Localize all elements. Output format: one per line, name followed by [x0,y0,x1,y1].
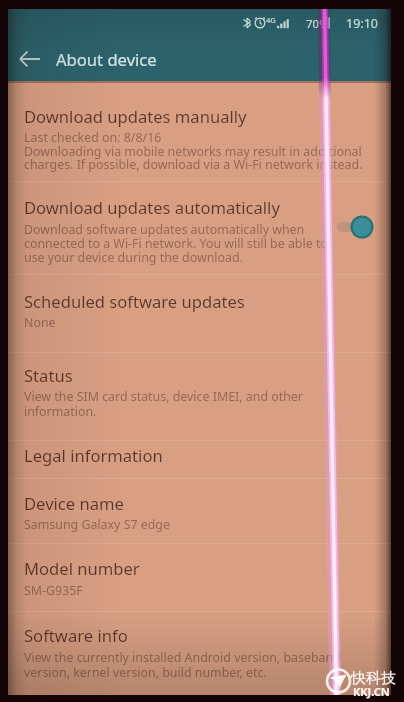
button[interactable]: Device name [24,492,124,515]
staticText: Software info [24,624,128,647]
staticText: Scheduled software updates [24,290,245,313]
staticText: Model number [24,557,140,580]
button[interactable]: Download updates manually [24,105,247,128]
button[interactable]: Model number [24,557,140,580]
staticText: 70% [306,16,329,32]
staticText: connected to a Wi-Fi network. You will s… [24,235,328,252]
staticText: View the currently installed Android ver… [24,649,341,666]
button[interactable]: Scheduled software updates [24,290,245,313]
staticText: View the SIM card status, device IMEI, a… [24,388,303,405]
staticText: information. [24,403,97,420]
staticText: version, kernel version, build number, e… [24,664,267,681]
button[interactable]: Legal information [24,444,163,467]
staticText: 4G [266,15,276,25]
staticText: KKJ.CN [353,684,390,699]
staticText: Legal information [24,444,163,467]
staticText: use your device during the download. [24,249,243,266]
button[interactable]: Download updates automatically [24,196,280,219]
staticText: Download updates automatically [24,196,280,219]
staticText: charges. If possible, download via a Wi-… [24,156,363,173]
button[interactable]: Back [8,37,52,81]
staticText: Samsung Galaxy S7 edge [24,516,170,533]
staticText: Device name [24,492,124,515]
staticText: Status [24,364,73,387]
staticText: Downloading via mobile networks may resu… [24,143,362,160]
button[interactable]: Software info [24,624,128,647]
staticText: 快科技 [351,669,396,688]
staticText: Last checked on: 8/8/16 [24,129,162,146]
staticText: Download updates manually [24,105,247,128]
staticText: About device [56,48,157,71]
staticText: Download software updates automatically … [24,221,305,238]
staticText: None [24,314,56,331]
button[interactable]: Download updates automatically toggle [336,215,376,239]
button[interactable]: Status [24,364,73,387]
staticText: SM-G935F [24,582,83,599]
staticText: 19:10 [346,15,378,32]
